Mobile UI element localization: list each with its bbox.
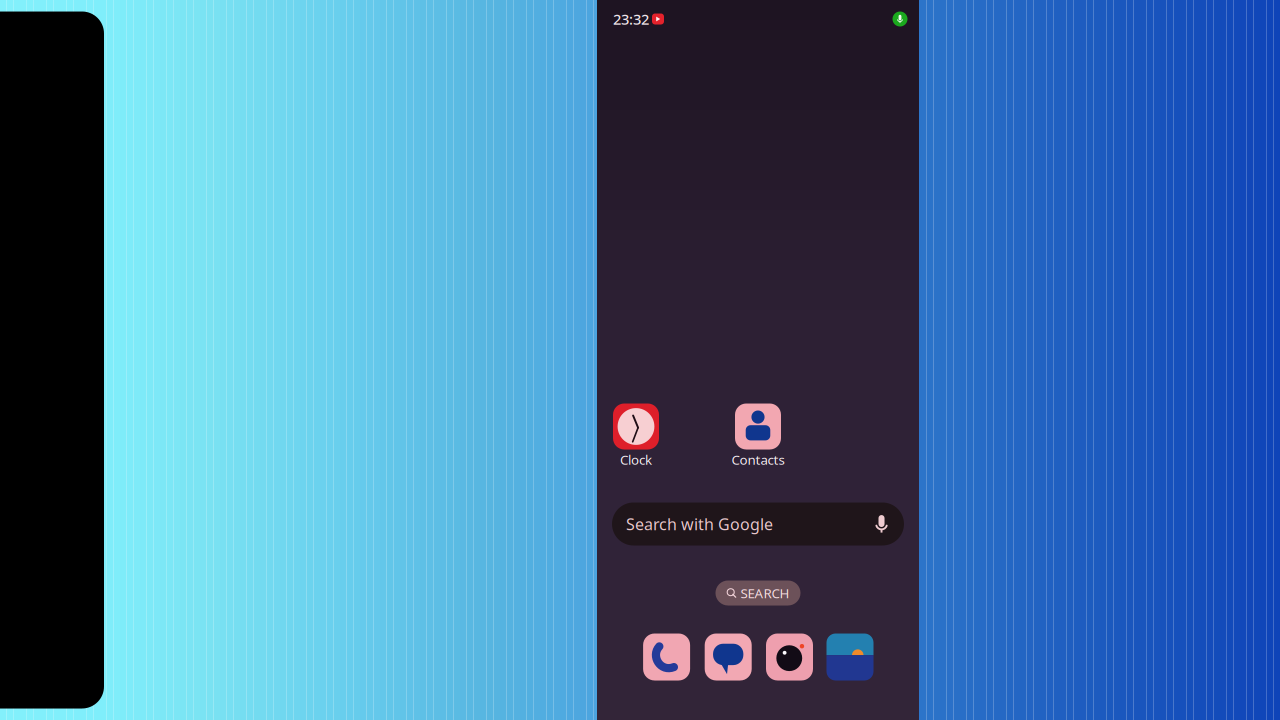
- staticText: 23:32: [613, 9, 649, 29]
- button[interactable]: Search with Google: [612, 502, 904, 545]
- staticText: SEARCH: [740, 584, 789, 602]
- staticText: Clock: [620, 451, 652, 468]
- staticText: Search with Google: [626, 513, 773, 535]
- button[interactable]: Messages: [705, 633, 752, 680]
- button[interactable]: Camera: [766, 633, 813, 680]
- button[interactable]: Contacts: [720, 398, 796, 468]
- button[interactable]: SEARCH: [715, 580, 800, 605]
- button[interactable]: Clock: [598, 398, 674, 468]
- button[interactable]: Photos: [826, 633, 873, 680]
- button[interactable]: Phone: [643, 633, 690, 680]
- staticText: Contacts: [731, 451, 784, 468]
